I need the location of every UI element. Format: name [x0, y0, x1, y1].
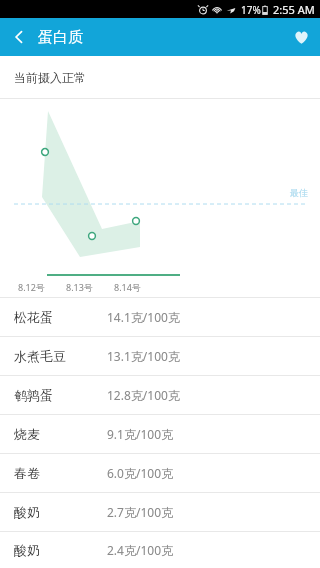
staticText: 当前摄入正常 [14, 70, 86, 85]
staticText: 12.8克/100克 [107, 387, 180, 403]
staticText: 酸奶 [14, 542, 40, 558]
button[interactable]: 松花蛋 [0, 298, 320, 336]
staticText: 松花蛋 [14, 309, 53, 325]
staticText: 2.4克/100克 [107, 542, 174, 558]
button[interactable]: 水煮毛豆 [0, 337, 320, 375]
staticText: 14.1克/100克 [107, 309, 180, 325]
staticText: 8.14号 [114, 281, 141, 293]
staticText: 蛋白质 [38, 28, 83, 47]
staticText: 春卷 [14, 465, 40, 481]
staticText: 酸奶 [14, 504, 40, 520]
staticText: 2:55 AM [273, 2, 315, 17]
button[interactable]: 春卷 [0, 454, 320, 492]
staticText: 6.0克/100克 [107, 465, 174, 481]
staticText: 2.7克/100克 [107, 504, 174, 520]
staticText: 8.12号 [18, 281, 45, 293]
staticText: 最佳 [290, 187, 308, 198]
staticText: 8.13号 [66, 281, 93, 293]
button[interactable]: 烧麦 [0, 415, 320, 453]
staticText: 9.1克/100克 [107, 426, 174, 442]
button[interactable]: 酸奶 [0, 493, 320, 531]
staticText: 17% [241, 3, 261, 17]
staticText: 水煮毛豆 [14, 348, 66, 364]
button[interactable]: 酸奶 [0, 532, 320, 568]
staticText: 鹌鹑蛋 [14, 387, 53, 403]
button[interactable]: Favorite [282, 18, 320, 56]
button[interactable]: 鹌鹑蛋 [0, 376, 320, 414]
staticText: 烧麦 [14, 426, 40, 442]
staticText: 13.1克/100克 [107, 348, 180, 364]
button[interactable]: Back [0, 18, 38, 56]
